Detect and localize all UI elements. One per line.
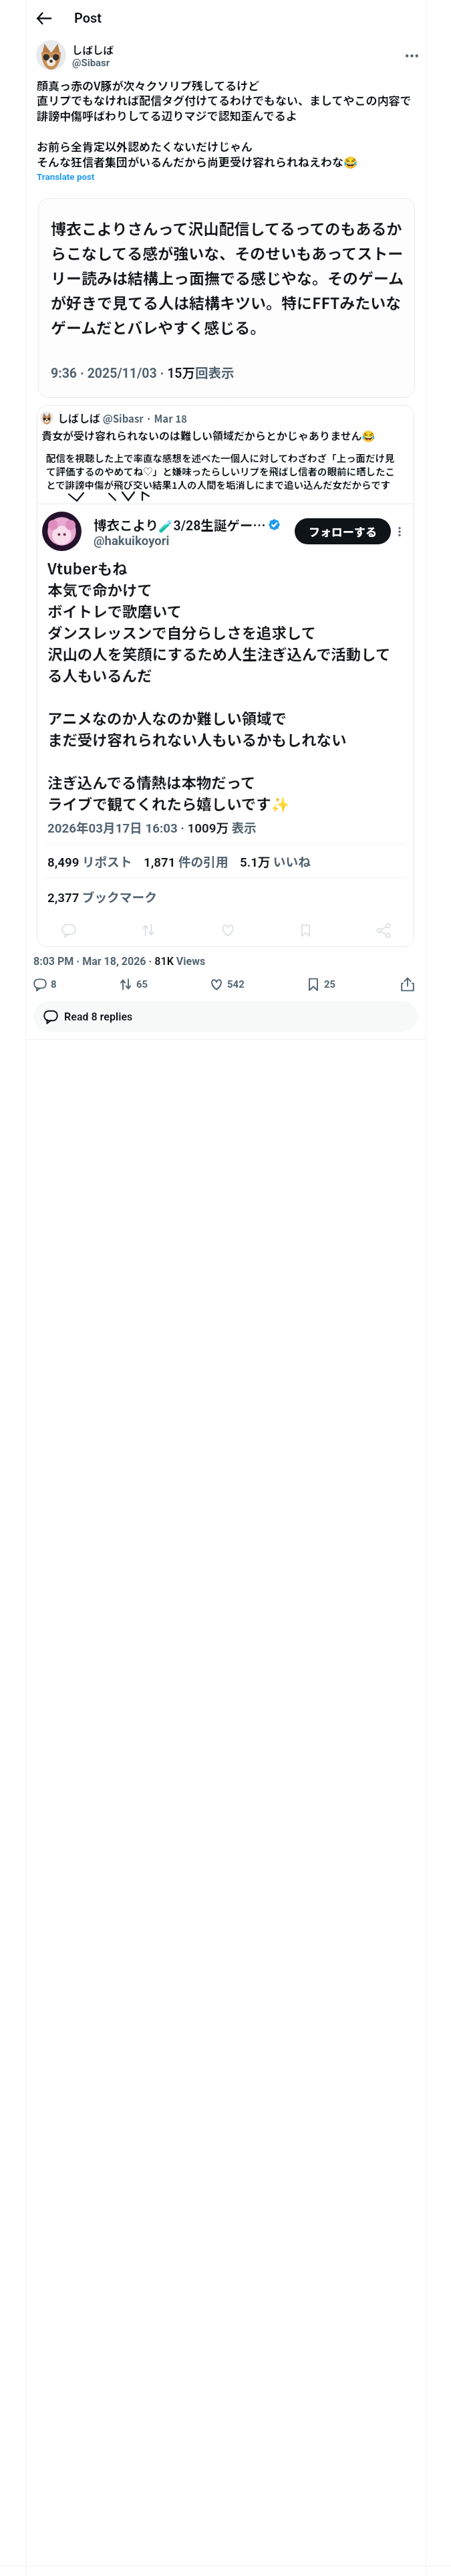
button[interactable]: Back — [37, 7, 59, 29]
staticText: 顔真っ赤のV豚が次々クソリプ残してるけど 直リプでもなければ配信タグ付けてるわけ… — [37, 77, 412, 170]
staticText: @Sibasr — [72, 57, 110, 69]
staticText: しばしば @Sibasr · Mar 18 — [57, 410, 187, 425]
button[interactable]: Reply — [33, 975, 57, 994]
staticText: 1,871 件の引用 — [144, 852, 229, 870]
staticText: 貴女が受け容れられないのは難しい領域だからとかじゃありません😂 — [41, 427, 375, 443]
button[interactable]: More options — [391, 522, 408, 542]
staticText: 2,377 ブックマーク — [47, 887, 157, 905]
staticText: 8 — [51, 978, 57, 990]
button[interactable]: 博衣こよりさんって沢山配信してるってのもあるか らこなしてる感が強いな、そのせい… — [38, 198, 415, 398]
button[interactable]: Like — [210, 975, 245, 994]
staticText: Read 8 replies — [64, 1010, 133, 1023]
staticText: 8:03 PM · Mar 18, 2026 · 81K Views — [33, 955, 206, 968]
staticText: 博衣こより🧪3/28生誕ゲー… — [94, 515, 266, 534]
staticText: 9:36 · 2025/11/03 · 15万回表示 — [51, 362, 235, 381]
staticText: @hakuikoyori — [94, 534, 170, 548]
staticText: Vtuberもね 本気で命かけて ボイトレで歌磨いて ダンスレッスンで自分らしさ… — [47, 557, 391, 814]
button[interactable]: More options — [401, 45, 422, 66]
staticText: 65 — [136, 978, 148, 990]
staticText: 8,499 リポスト — [47, 852, 132, 870]
button[interactable]: しばしば @Sibasr · Mar 18 — [37, 405, 414, 947]
button[interactable]: Bookmark — [307, 975, 336, 994]
button[interactable]: Translate post — [37, 172, 95, 183]
staticText: 2026年03月17日 16:03 · 1009万 表示 — [47, 818, 257, 836]
staticText: 5.1万 いいね — [240, 852, 311, 870]
staticText: 配信を視聴した上で率直な感想を述べた一個人に対してわざわざ「上っ面だけ見 て評価… — [46, 451, 395, 492]
staticText: しばしば — [72, 42, 114, 57]
staticText: フォローする — [309, 523, 377, 540]
button[interactable]: Share — [398, 974, 418, 994]
staticText: Post — [74, 10, 102, 25]
staticText: 博衣こよりさんって沢山配信してるってのもあるか らこなしてる感が強いな、そのせい… — [51, 217, 404, 338]
button[interactable]: Repost — [119, 975, 148, 994]
staticText: 542 — [227, 978, 245, 990]
button[interactable]: フォローする — [295, 518, 391, 544]
staticText: 25 — [324, 978, 336, 990]
button[interactable]: Read 8 replies — [33, 1001, 418, 1032]
